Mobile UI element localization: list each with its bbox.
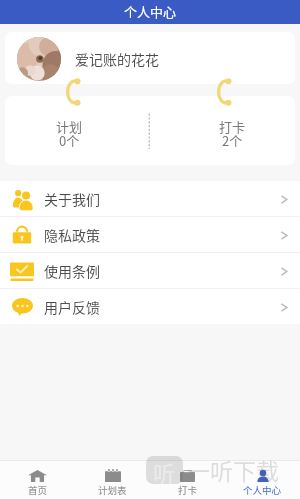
staticText: 首页 <box>28 483 48 497</box>
staticText: 使用条例 <box>44 261 100 281</box>
button[interactable]: 计划表 <box>75 461 150 499</box>
button[interactable]: 隐私政策 <box>0 217 300 252</box>
button[interactable]: 关于我们 <box>0 181 300 216</box>
button[interactable]: 打卡 <box>150 461 225 499</box>
staticText: 隐私政策 <box>44 225 100 245</box>
staticText: 关于我们 <box>44 189 100 209</box>
button[interactable]: 个人中心 <box>225 461 300 499</box>
button[interactable]: 用户反馈 <box>0 289 300 324</box>
staticText: 一听下载 <box>187 453 279 486</box>
staticText: 0个 <box>59 131 80 150</box>
staticText: 听 <box>153 456 176 484</box>
button[interactable]: 计划 <box>39 96 99 165</box>
button[interactable]: 首页 <box>0 461 75 499</box>
staticText: 用户反馈 <box>44 297 100 317</box>
staticText: 爱记账的花花 <box>75 49 159 69</box>
staticText: 个人中心 <box>243 483 282 497</box>
staticText: 计划表 <box>98 483 127 497</box>
button[interactable]: 打卡 <box>202 96 262 165</box>
staticText: 计划 <box>56 117 83 136</box>
button[interactable]: 使用条例 <box>0 253 300 288</box>
staticText: 2个 <box>222 131 243 150</box>
button[interactable]: 爱记账的花花 <box>5 32 295 84</box>
staticText: 打卡 <box>219 117 246 136</box>
staticText: 打卡 <box>178 483 198 497</box>
staticText: 个人中心 <box>124 2 177 21</box>
